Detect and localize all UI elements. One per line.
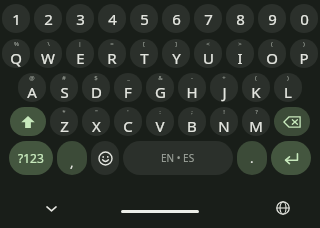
- button[interactable]: !: [210, 107, 238, 136]
- button[interactable]: |: [66, 39, 94, 68]
- staticText: ,: [70, 153, 74, 171]
- staticText: [: [143, 40, 145, 48]
- button[interactable]: (: [242, 73, 270, 102]
- staticText: \: [47, 40, 50, 48]
- button[interactable]: =: [98, 39, 126, 68]
- button[interactable]: ]: [162, 39, 190, 68]
- button[interactable]: Backspace: [274, 107, 310, 136]
- staticText: 5: [140, 9, 149, 29]
- button[interactable]: $: [82, 73, 110, 102]
- button[interactable]: >: [226, 39, 254, 68]
- staticText: A: [27, 82, 37, 102]
- staticText: 6: [172, 9, 181, 29]
- staticText: |: [78, 40, 82, 48]
- staticText: O: [266, 48, 278, 68]
- button[interactable]: Change language: [270, 195, 296, 221]
- staticText: V: [155, 116, 165, 136]
- staticText: T: [140, 48, 149, 68]
- button[interactable]: ": [82, 107, 110, 136]
- button[interactable]: ': [114, 107, 142, 136]
- button[interactable]: &: [146, 73, 174, 102]
- button[interactable]: Enter: [271, 141, 311, 175]
- button[interactable]: EN • ES: [123, 141, 233, 175]
- staticText: 3: [76, 9, 85, 29]
- staticText: $: [94, 74, 98, 82]
- staticText: S: [60, 82, 69, 102]
- staticText: I: [237, 48, 243, 68]
- staticText: :: [159, 108, 161, 116]
- button[interactable]: *: [50, 107, 78, 136]
- button[interactable]: :: [146, 107, 174, 136]
- button[interactable]: ?: [242, 107, 270, 136]
- staticText: 4: [108, 9, 117, 29]
- staticText: EN • ES: [161, 151, 195, 165]
- staticText: B: [187, 116, 197, 136]
- staticText: =: [110, 40, 114, 48]
- staticText: !: [223, 108, 225, 116]
- staticText: N: [218, 116, 230, 136]
- button[interactable]: 5: [130, 4, 158, 33]
- staticText: #: [62, 74, 66, 82]
- button[interactable]: ;: [178, 107, 206, 136]
- staticText: 8: [236, 9, 245, 29]
- staticText: Y: [172, 48, 181, 68]
- button[interactable]: %: [2, 39, 30, 68]
- button[interactable]: #: [50, 73, 78, 102]
- staticText: (: [255, 74, 257, 82]
- staticText: G: [155, 82, 166, 102]
- button[interactable]: Hide keyboard: [38, 195, 64, 221]
- button[interactable]: (: [258, 39, 286, 68]
- button[interactable]: ?123: [9, 141, 53, 175]
- staticText: Q: [10, 48, 22, 68]
- staticText: 7: [204, 9, 213, 29]
- staticText: ?123: [18, 150, 44, 166]
- staticText: W: [41, 48, 55, 68]
- button[interactable]: 4: [98, 4, 126, 33]
- button[interactable]: 2: [34, 4, 62, 33]
- button[interactable]: 7: [194, 4, 222, 33]
- staticText: K: [251, 82, 261, 102]
- staticText: H: [186, 82, 198, 102]
- staticText: E: [76, 48, 85, 68]
- button[interactable]: Shift: [10, 107, 46, 136]
- staticText: ": [95, 108, 98, 116]
- button[interactable]: @: [18, 73, 46, 102]
- button[interactable]: _: [114, 73, 142, 102]
- staticText: 2: [44, 9, 53, 29]
- button[interactable]: Period: [237, 141, 267, 175]
- staticText: 0: [300, 9, 309, 29]
- staticText: >: [238, 40, 242, 48]
- staticText: ): [287, 74, 289, 82]
- staticText: .: [250, 149, 254, 167]
- staticText: D: [91, 82, 102, 102]
- button[interactable]: 6: [162, 4, 190, 33]
- staticText: J: [222, 82, 227, 102]
- staticText: (: [271, 40, 273, 48]
- button[interactable]: 3: [66, 4, 94, 33]
- staticText: X: [92, 116, 101, 136]
- staticText: ): [303, 40, 305, 48]
- staticText: -: [191, 74, 193, 82]
- staticText: @: [29, 74, 35, 82]
- button[interactable]: \: [34, 39, 62, 68]
- button[interactable]: +: [210, 73, 238, 102]
- staticText: +: [222, 74, 226, 82]
- button[interactable]: ): [274, 73, 302, 102]
- button[interactable]: Comma: [57, 141, 87, 175]
- staticText: ': [127, 108, 129, 116]
- button[interactable]: 9: [258, 4, 286, 33]
- staticText: ]: [175, 40, 177, 48]
- staticText: R: [107, 48, 117, 68]
- button[interactable]: Emoji: [91, 141, 119, 175]
- staticText: M: [249, 116, 263, 136]
- staticText: L: [284, 82, 292, 102]
- button[interactable]: <: [194, 39, 222, 68]
- staticText: <: [206, 40, 210, 48]
- button[interactable]: ): [290, 39, 318, 68]
- button[interactable]: 8: [226, 4, 254, 33]
- button[interactable]: 0: [290, 4, 318, 33]
- button[interactable]: 1: [2, 4, 30, 33]
- button[interactable]: -: [178, 73, 206, 102]
- button[interactable]: [: [130, 39, 158, 68]
- staticText: P: [299, 48, 309, 68]
